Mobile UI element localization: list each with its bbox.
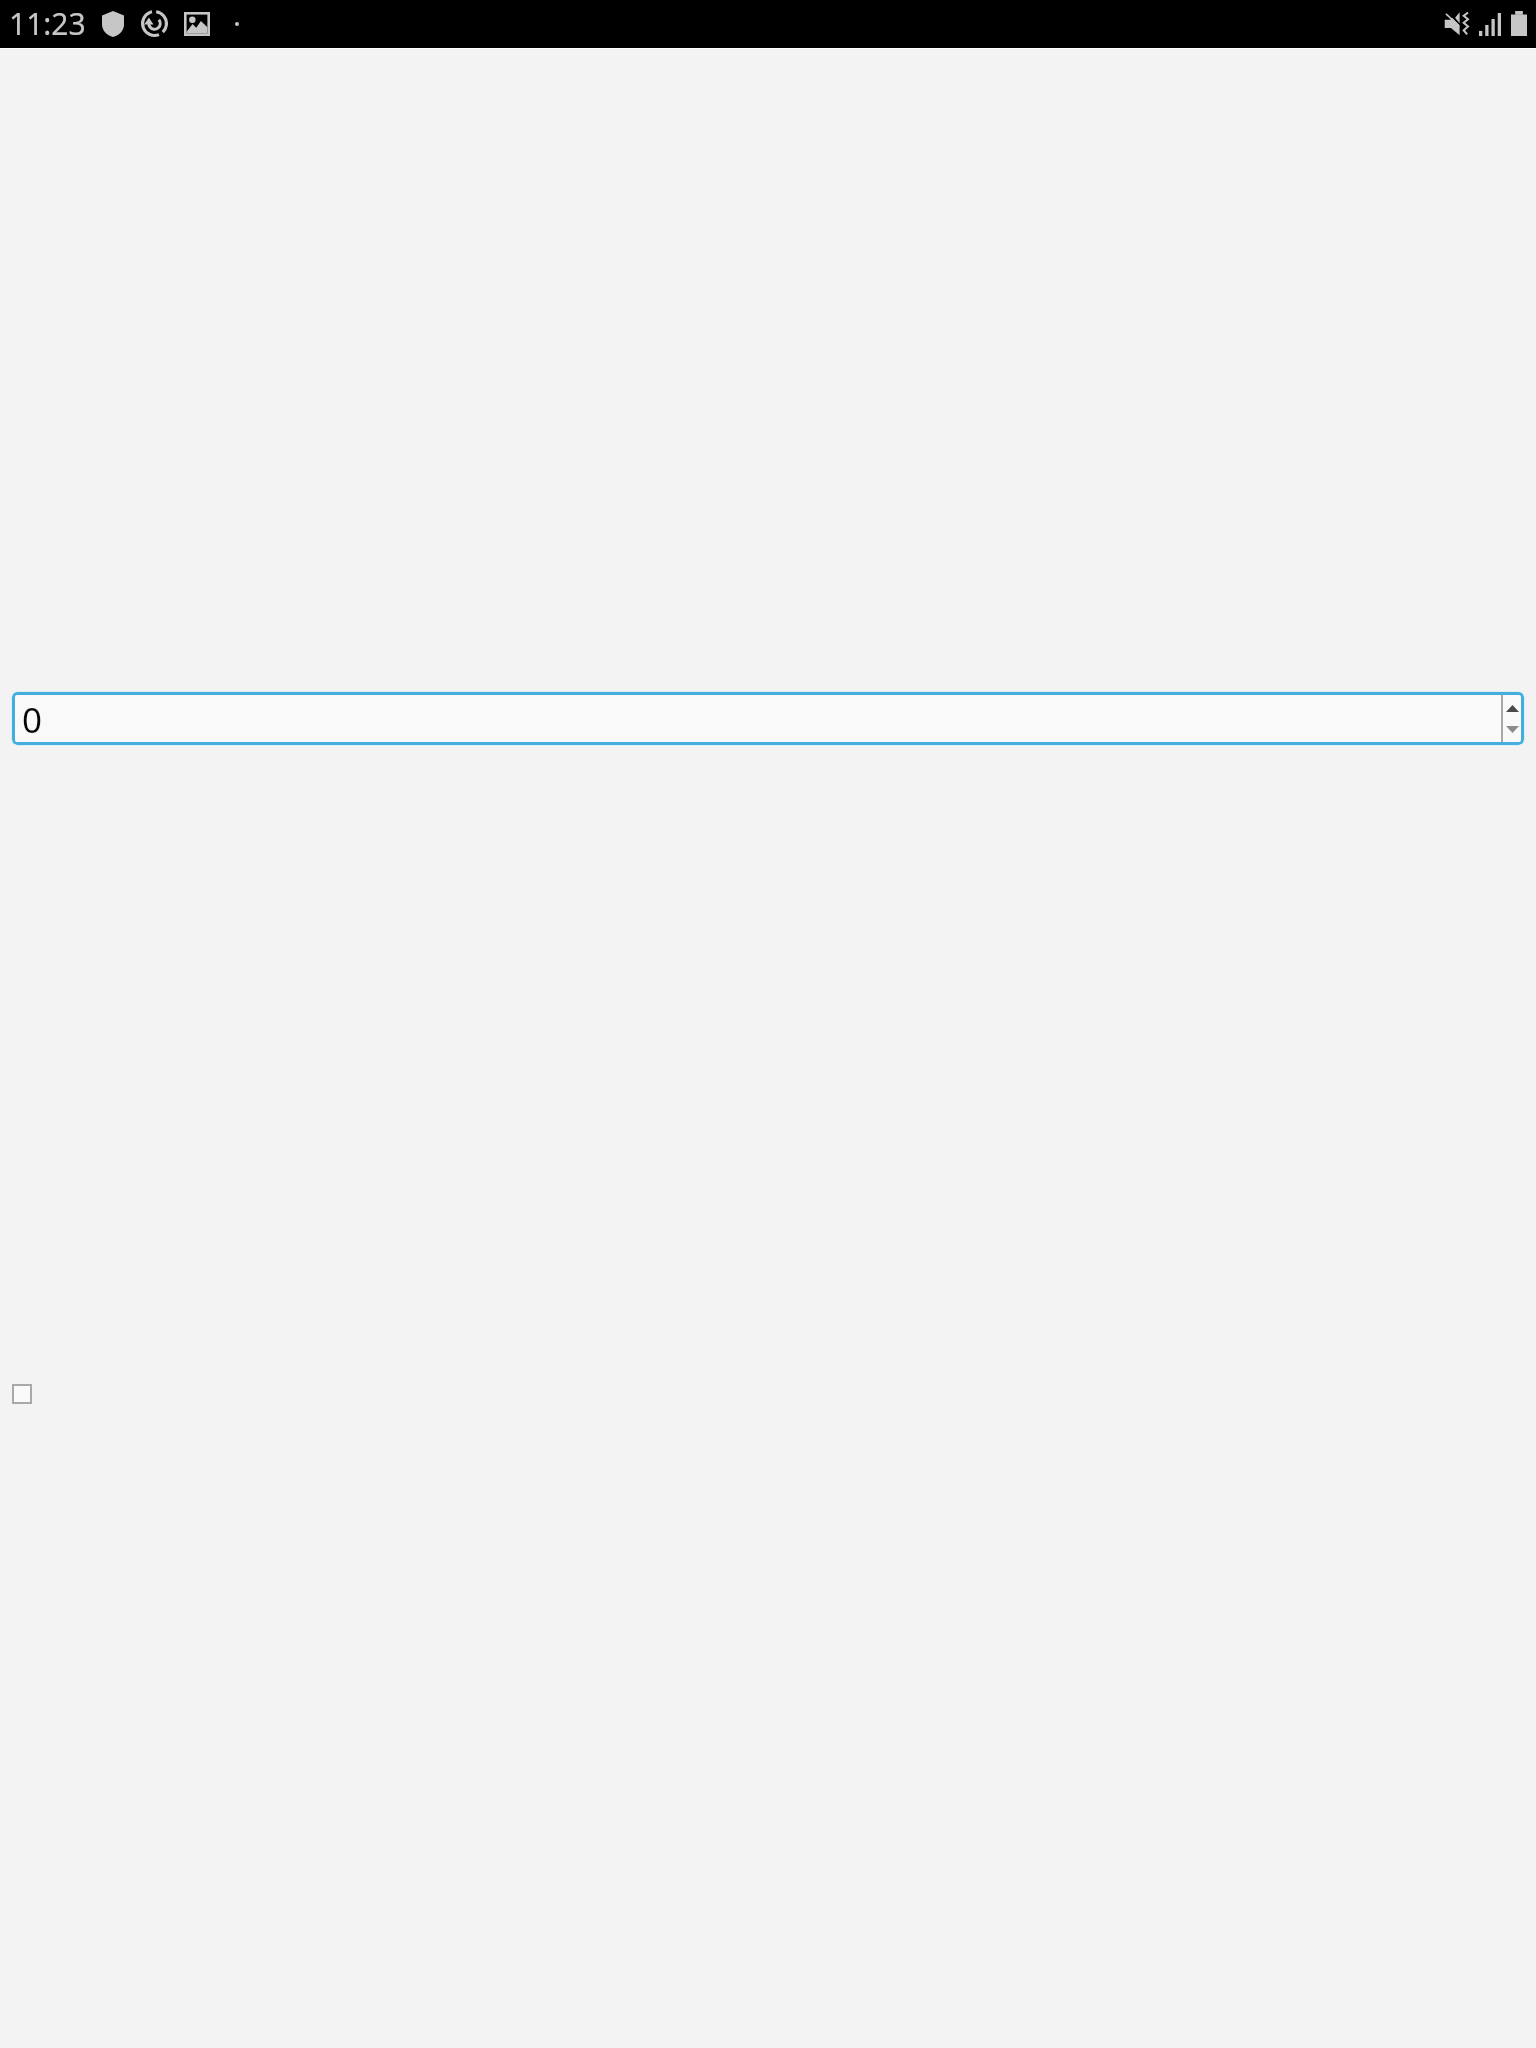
button[interactable]: Increase value	[1501, 692, 1524, 718]
button[interactable]: Checkbox	[12, 1384, 32, 1404]
staticText: 11:23	[9, 3, 86, 44]
button[interactable]: Number input	[12, 692, 1524, 745]
button[interactable]: Decrease value	[1501, 718, 1524, 745]
staticText: 0	[22, 696, 43, 744]
